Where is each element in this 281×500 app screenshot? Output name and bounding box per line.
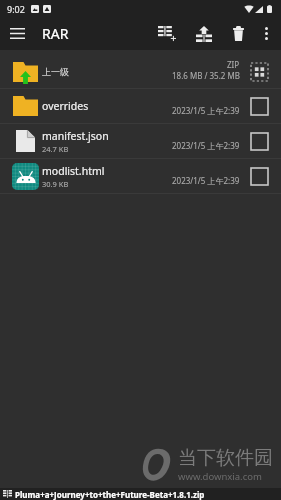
staticText: modlist.html bbox=[42, 164, 105, 178]
button[interactable]: Open navigation drawer bbox=[0, 17, 34, 50]
staticText: Pluma+a+Journey+to+the+Future-Beta+1.8.1… bbox=[15, 489, 205, 500]
button[interactable]: More options bbox=[252, 17, 280, 50]
staticText: www.downxia.com bbox=[178, 470, 262, 483]
staticText: overrides bbox=[42, 99, 89, 113]
staticText: RAR bbox=[42, 24, 69, 43]
button[interactable]: Add to archive bbox=[149, 17, 185, 50]
staticText: 2023/1/5 上午2:39 bbox=[172, 140, 240, 151]
staticText: 9:02 bbox=[7, 3, 25, 15]
staticText: 24.7 KB bbox=[42, 144, 69, 154]
button[interactable]: overrides bbox=[0, 89, 281, 124]
staticText: 上一级 bbox=[42, 66, 69, 77]
staticText: manifest.json bbox=[42, 129, 109, 143]
button[interactable]: Delete bbox=[223, 17, 253, 50]
staticText: 2023/1/5 上午2:39 bbox=[172, 105, 240, 116]
button[interactable]: Extract bbox=[187, 17, 221, 50]
button[interactable]: modlist.html bbox=[0, 159, 281, 194]
staticText: ZIP bbox=[227, 59, 240, 70]
staticText: 2023/1/5 上午2:39 bbox=[172, 175, 240, 186]
staticText: 当下软件园 bbox=[178, 446, 273, 470]
staticText: 30.9 KB bbox=[42, 179, 69, 189]
staticText: 18.6 MB / 35.2 MB bbox=[172, 70, 240, 81]
button[interactable]: 上一级 bbox=[0, 50, 281, 89]
button[interactable]: Pluma+a+Journey+to+the+Future-Beta+1.8.1… bbox=[0, 488, 281, 500]
button[interactable]: manifest.json bbox=[0, 124, 281, 159]
